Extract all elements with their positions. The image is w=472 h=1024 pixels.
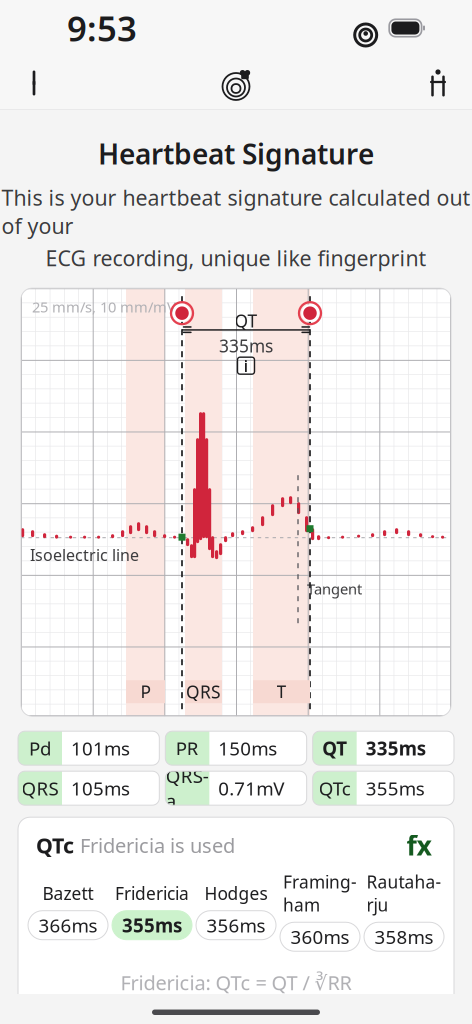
staticText: 25 mm/s, 10 mm/mV <box>32 297 176 317</box>
staticText: QT <box>234 309 257 332</box>
button[interactable]: Hodges <box>196 882 276 940</box>
staticText: Fridericia <box>115 882 189 905</box>
button[interactable]: Heartbeat signature <box>208 56 264 110</box>
button[interactable]: Back <box>6 56 62 110</box>
button[interactable]: Bazett <box>28 882 108 940</box>
staticText: Hodges <box>204 882 267 905</box>
staticText: 101ms <box>71 736 130 761</box>
staticText: 356ms <box>206 913 265 938</box>
staticText: QRS <box>21 776 58 801</box>
staticText: Rautaharju <box>366 870 441 916</box>
staticText: T <box>276 680 286 703</box>
staticText: 355ms <box>122 913 182 938</box>
staticText: 360ms <box>290 924 349 949</box>
staticText: Fridericia is used <box>80 832 235 858</box>
staticText: 335ms <box>219 334 273 357</box>
staticText: P <box>140 680 150 703</box>
staticText: 105ms <box>71 776 130 801</box>
staticText: Heartbeat Signature <box>98 135 374 172</box>
button[interactable]: PR <box>165 731 307 765</box>
button[interactable]: QRS <box>18 771 159 805</box>
staticText: 335ms <box>366 736 426 761</box>
staticText: QTc <box>319 776 351 801</box>
staticText: 355ms <box>366 776 425 801</box>
staticText: 366ms <box>38 913 97 938</box>
staticText: i <box>243 355 248 376</box>
staticText: Fridericia: QTc = QT / ∛RR <box>120 969 351 996</box>
staticText: ECG recording, unique like fingerprint <box>45 244 426 272</box>
button[interactable]: QRSa <box>165 771 307 805</box>
staticText: PR <box>176 736 199 761</box>
staticText: Bazett <box>42 882 93 905</box>
staticText: 150ms <box>218 736 277 761</box>
staticText: This is your heartbeat signature calcula… <box>1 183 470 240</box>
button[interactable]: Framingham <box>280 870 360 951</box>
staticText: Framingham <box>283 870 357 916</box>
staticText: QRSa <box>166 763 209 813</box>
staticText: 358ms <box>374 924 433 949</box>
staticText: HR = 72bpm <box>243 1010 335 1024</box>
staticText: Pd <box>29 736 51 761</box>
button[interactable]: Rautaharju <box>364 870 444 951</box>
button[interactable]: QTc <box>313 771 454 805</box>
button[interactable]: Formula <box>402 830 436 860</box>
staticText: QRS <box>186 680 221 703</box>
staticText: QT <box>322 736 347 761</box>
button[interactable]: Fridericia <box>112 882 192 940</box>
button[interactable]: QT <box>313 731 454 765</box>
staticText: 9:53 <box>67 5 137 51</box>
button[interactable]: Calipers <box>410 56 466 110</box>
staticText: QTc <box>36 831 74 859</box>
staticText: Isoelectric line <box>30 544 139 565</box>
staticText: fx <box>406 827 431 863</box>
staticText: 0.71mV <box>218 776 284 801</box>
button[interactable]: Interval info <box>237 357 254 374</box>
staticText: Tangent <box>307 579 362 599</box>
button[interactable]: Pd <box>18 731 159 765</box>
